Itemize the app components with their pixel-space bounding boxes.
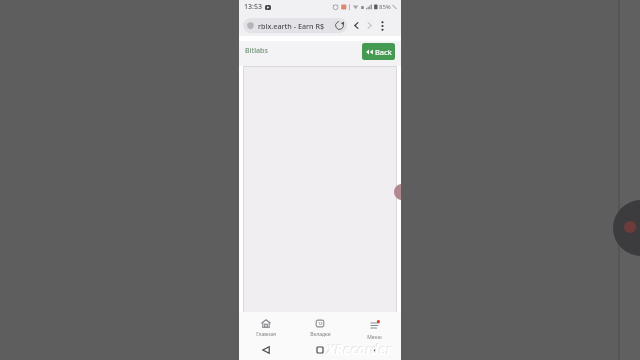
- button[interactable]: Меню: [347, 312, 401, 340]
- staticText: Back: [375, 47, 392, 57]
- staticText: Вкладки: [310, 331, 331, 338]
- button[interactable]: Главная: [239, 312, 293, 340]
- staticText: 12: [318, 321, 323, 326]
- button[interactable]: Back: [362, 43, 395, 60]
- button[interactable]: Home: [293, 340, 347, 360]
- staticText: Главная: [256, 331, 276, 338]
- button[interactable]: 12: [293, 312, 347, 340]
- staticText: 85%: [379, 3, 391, 11]
- staticText: rblx.earth - Earn R$: [258, 21, 325, 31]
- button[interactable]: Record: [613, 200, 640, 256]
- staticText: 13:53: [244, 2, 262, 12]
- button[interactable]: rblx.earth - Earn R$: [243, 18, 347, 33]
- staticText: Bitlabs: [245, 46, 268, 56]
- staticText: XRecorder: [326, 340, 392, 358]
- button[interactable]: Back: [350, 19, 363, 32]
- staticText: Меню: [367, 334, 382, 340]
- button[interactable]: Recents: [347, 340, 401, 360]
- button[interactable]: Floating bubble: [394, 184, 401, 200]
- button[interactable]: Forward: [363, 19, 376, 32]
- button[interactable]: Reload: [334, 20, 345, 31]
- staticText: XRecorder: [327, 341, 393, 359]
- button[interactable]: More options: [376, 19, 389, 32]
- button[interactable]: Back: [239, 340, 293, 360]
